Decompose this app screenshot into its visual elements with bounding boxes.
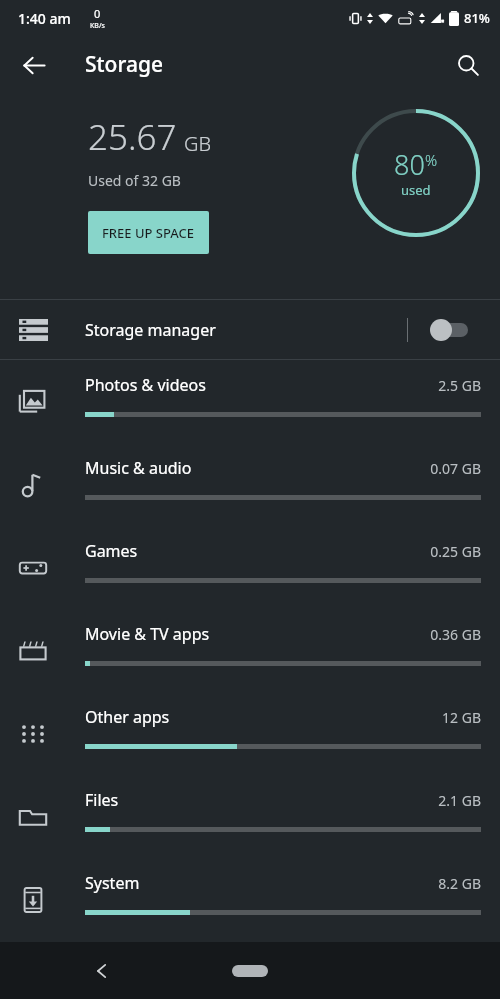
button[interactable]: Back: [78, 947, 126, 995]
staticText: 12 GB: [442, 708, 481, 727]
staticText: Storage manager: [85, 319, 216, 341]
button[interactable]: Movie & TV apps: [0, 609, 500, 692]
staticText: Used of 32 GB: [88, 171, 181, 190]
button[interactable]: Music & audio: [0, 443, 500, 526]
staticText: 1:40 am: [18, 9, 71, 28]
staticText: Files: [85, 789, 438, 811]
staticText: 80: [394, 146, 425, 183]
staticText: used: [401, 181, 431, 199]
staticText: GB: [184, 130, 212, 157]
staticText: Other apps: [85, 706, 442, 728]
staticText: 25.67: [88, 113, 177, 161]
staticText: KB/s: [90, 21, 105, 31]
button[interactable]: Search: [444, 41, 492, 89]
button[interactable]: [430, 318, 468, 342]
staticText: System: [85, 872, 438, 894]
staticText: 8.2 GB: [438, 874, 481, 893]
staticText: Movie & TV apps: [85, 623, 430, 645]
staticText: 0.36 GB: [430, 625, 481, 644]
button[interactable]: Storage manager: [0, 300, 500, 359]
staticText: 81%: [464, 9, 490, 27]
button[interactable]: Back: [10, 41, 58, 89]
button[interactable]: Files: [0, 775, 500, 858]
staticText: FREE UP SPACE: [102, 224, 195, 242]
staticText: Music & audio: [85, 457, 430, 479]
staticText: Games: [85, 540, 430, 562]
staticText: Storage: [85, 50, 163, 79]
button[interactable]: Games: [0, 526, 500, 609]
button[interactable]: Other apps: [0, 692, 500, 775]
staticText: Photos & videos: [85, 374, 438, 396]
button[interactable]: FREE UP SPACE: [88, 211, 209, 254]
button[interactable]: Photos & videos: [0, 360, 500, 443]
staticText: %: [425, 150, 438, 170]
staticText: 2.5 GB: [438, 376, 481, 395]
button[interactable]: System: [0, 858, 500, 941]
button[interactable]: Home: [232, 965, 268, 977]
staticText: 0: [94, 6, 101, 21]
staticText: 2.1 GB: [438, 791, 481, 810]
staticText: 0.07 GB: [430, 459, 481, 478]
staticText: 0.25 GB: [430, 542, 481, 561]
